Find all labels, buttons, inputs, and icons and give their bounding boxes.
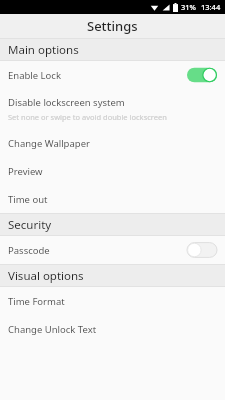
staticText: Passcode: [8, 244, 50, 257]
button[interactable]: Enable Lock: [0, 61, 225, 89]
staticText: Visual options: [8, 268, 84, 284]
button[interactable]: Change Wallpaper: [0, 129, 225, 157]
staticText: Set none or swipe to avoid double locksc…: [8, 112, 167, 122]
button[interactable]: Time out: [0, 185, 225, 213]
staticText: Security: [8, 217, 52, 233]
staticText: 31%: [181, 2, 196, 12]
staticText: Preview: [8, 165, 43, 178]
staticText: Change Unlock Text: [8, 323, 97, 336]
button[interactable]: Change Unlock Text: [0, 315, 225, 343]
button[interactable]: Toggle on: [187, 67, 217, 83]
button[interactable]: Passcode: [0, 236, 225, 264]
staticText: Change Wallpaper: [8, 137, 90, 150]
staticText: Disable lockscreen system: [8, 96, 125, 109]
button[interactable]: Disable lockscreen system: [0, 89, 225, 129]
button[interactable]: Preview: [0, 157, 225, 185]
staticText: Settings: [87, 17, 138, 35]
staticText: Enable Lock: [8, 69, 61, 82]
staticText: Time Format: [8, 295, 65, 308]
staticText: Main options: [8, 42, 79, 58]
staticText: Time out: [8, 193, 48, 206]
button[interactable]: Toggle off: [187, 242, 217, 258]
button[interactable]: Time Format: [0, 287, 225, 315]
staticText: 13:44: [201, 2, 221, 12]
